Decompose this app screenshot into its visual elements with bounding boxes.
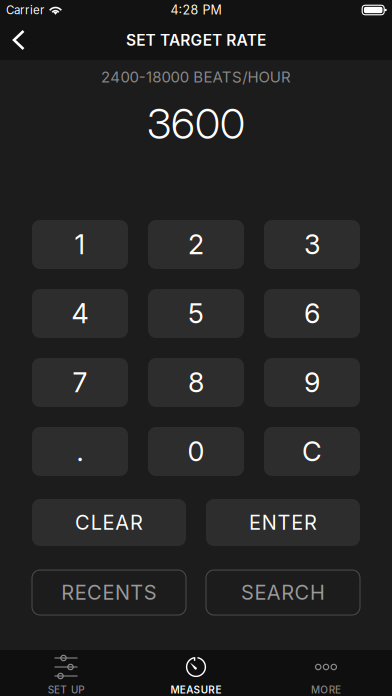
staticText: SEARCH bbox=[241, 580, 325, 605]
button[interactable]: MEASURE bbox=[131, 650, 261, 696]
button[interactable]: MORE bbox=[261, 650, 391, 696]
button[interactable]: 6 bbox=[264, 289, 360, 338]
staticText: MEASURE bbox=[170, 684, 222, 696]
staticText: C bbox=[302, 435, 322, 468]
staticText: ENTER bbox=[249, 510, 317, 535]
staticText: 4 bbox=[71, 297, 88, 330]
staticText: CLEAR bbox=[75, 510, 143, 535]
staticText: 2400-18000 BEATS/HOUR bbox=[101, 68, 291, 86]
button[interactable]: 0 bbox=[148, 427, 244, 476]
button[interactable]: . bbox=[32, 427, 128, 476]
staticText: 9 bbox=[304, 366, 320, 399]
button[interactable]: SEARCH bbox=[206, 570, 360, 615]
button[interactable]: SET UP bbox=[1, 650, 131, 696]
staticText: 2 bbox=[188, 228, 204, 261]
staticText: 5 bbox=[188, 297, 204, 330]
staticText: 3600 bbox=[147, 98, 245, 149]
staticText: 7 bbox=[72, 366, 87, 399]
button[interactable]: 9 bbox=[264, 358, 360, 407]
button[interactable]: 3 bbox=[264, 220, 360, 269]
staticText: 6 bbox=[304, 297, 320, 330]
staticText: SET TARGET RATE bbox=[126, 31, 266, 49]
staticText: Carrier bbox=[6, 3, 44, 17]
button[interactable]: ENTER bbox=[206, 499, 360, 546]
button[interactable]: CLEAR bbox=[32, 499, 186, 546]
button[interactable]: 2 bbox=[148, 220, 244, 269]
staticText: RECENTS bbox=[61, 580, 157, 605]
staticText: 3 bbox=[304, 228, 320, 261]
staticText: 4:28 PM bbox=[170, 2, 221, 17]
button[interactable]: C bbox=[264, 427, 360, 476]
button[interactable]: RECENTS bbox=[32, 570, 186, 615]
button[interactable]: 4 bbox=[32, 289, 128, 338]
staticText: SET UP bbox=[48, 684, 84, 696]
staticText: 0 bbox=[187, 435, 204, 468]
button[interactable]: 8 bbox=[148, 358, 244, 407]
staticText: . bbox=[76, 435, 83, 468]
staticText: 1 bbox=[74, 228, 85, 261]
staticText: 8 bbox=[188, 366, 204, 399]
button[interactable]: 5 bbox=[148, 289, 244, 338]
button[interactable]: 1 bbox=[32, 220, 128, 269]
button[interactable]: Back bbox=[0, 20, 39, 60]
staticText: MORE bbox=[311, 684, 341, 696]
button[interactable]: 7 bbox=[32, 358, 128, 407]
